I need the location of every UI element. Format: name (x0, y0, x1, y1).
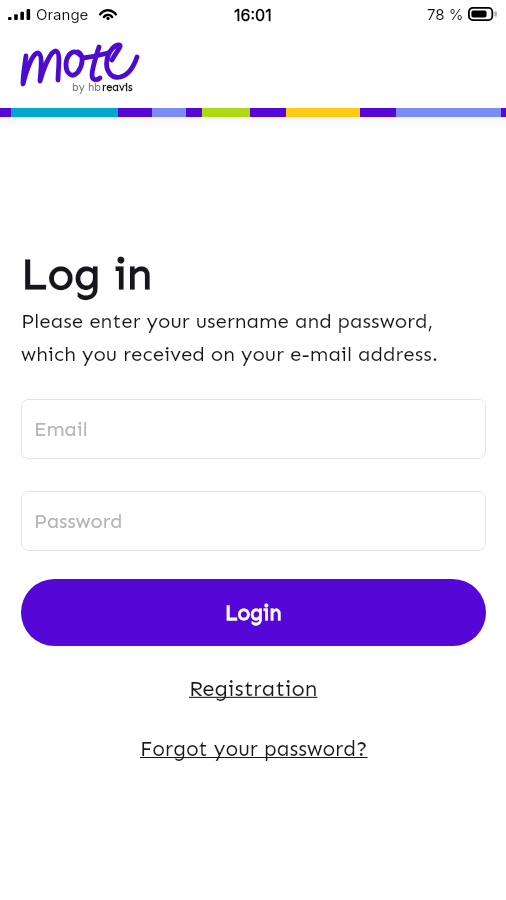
staticText: by hb (72, 81, 102, 94)
staticText: Log in (21, 248, 153, 301)
staticText: 78 % (427, 5, 464, 23)
staticText: Please enter your username and password,… (21, 309, 438, 366)
button[interactable]: Login (21, 579, 486, 646)
staticText: Registration (189, 675, 318, 701)
button[interactable]: Registration (183, 669, 324, 707)
staticText: Forgot your password? (140, 736, 368, 761)
button[interactable]: Email (21, 399, 486, 459)
staticText: Orange (36, 5, 89, 23)
button[interactable]: Password (21, 491, 486, 551)
staticText: Login (225, 600, 282, 625)
staticText: Email (34, 417, 88, 441)
staticText: 16:01 (234, 5, 272, 24)
button[interactable]: Forgot your password? (134, 730, 374, 767)
staticText: Password (34, 509, 123, 533)
staticText: reavis (102, 81, 133, 94)
